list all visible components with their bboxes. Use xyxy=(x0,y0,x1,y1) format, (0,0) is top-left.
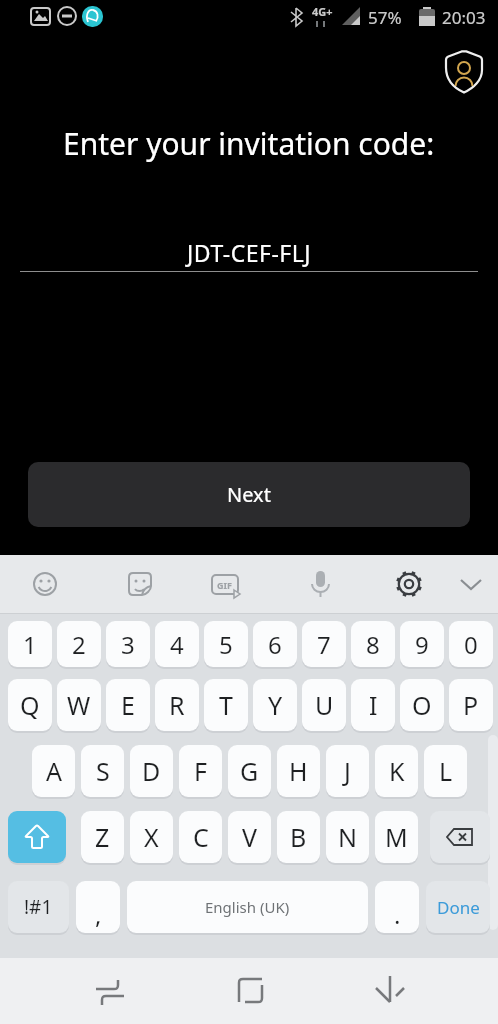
button[interactable]: . xyxy=(375,881,419,933)
button[interactable]: , xyxy=(76,881,120,933)
button[interactable] xyxy=(368,968,412,1012)
staticText: 4G+ xyxy=(312,4,333,19)
staticText: W xyxy=(67,688,91,722)
button[interactable]: 2 xyxy=(57,621,101,667)
button[interactable]: H xyxy=(277,745,320,797)
button[interactable]: GIF xyxy=(205,568,245,600)
staticText: 2 xyxy=(72,628,86,661)
staticText: M xyxy=(385,820,408,854)
button[interactable]: 4 xyxy=(155,621,199,667)
staticText: 1 xyxy=(23,628,37,661)
button[interactable]: A xyxy=(32,745,75,797)
staticText: F xyxy=(194,754,207,788)
button[interactable]: 3 xyxy=(106,621,150,667)
button[interactable] xyxy=(300,568,340,602)
button[interactable]: M xyxy=(375,811,418,863)
button[interactable]: X xyxy=(130,811,173,863)
staticText: Y xyxy=(268,688,283,722)
button[interactable]: O xyxy=(400,679,444,731)
staticText: K xyxy=(389,754,405,788)
button[interactable]: U xyxy=(302,679,346,731)
staticText: H xyxy=(289,754,308,788)
staticText: Q xyxy=(20,688,40,722)
staticText: , xyxy=(95,898,102,931)
staticText: E xyxy=(121,688,135,722)
staticText: O xyxy=(412,688,432,722)
button[interactable]: V xyxy=(228,811,271,863)
button[interactable]: C xyxy=(179,811,222,863)
staticText: B xyxy=(290,820,307,854)
button[interactable]: !#1 xyxy=(8,881,69,933)
button[interactable]: K xyxy=(375,745,418,797)
button[interactable] xyxy=(390,566,428,602)
button[interactable]: 1 xyxy=(8,621,52,667)
staticText: 20:03 xyxy=(442,6,486,29)
button[interactable]: T xyxy=(204,679,248,731)
button[interactable]: R xyxy=(155,679,199,731)
staticText: English (UK) xyxy=(205,897,290,917)
button[interactable]: Done xyxy=(426,881,490,933)
button[interactable]: English (UK) xyxy=(127,881,368,933)
staticText: R xyxy=(169,688,185,722)
staticText: !#1 xyxy=(24,894,53,920)
button[interactable]: P xyxy=(449,679,493,731)
button[interactable]: 0 xyxy=(449,621,493,667)
staticText: Enter your invitation code: xyxy=(63,123,435,164)
staticText: 7 xyxy=(317,628,331,661)
button[interactable]: G xyxy=(228,745,271,797)
staticText: L xyxy=(439,754,453,788)
staticText: Next xyxy=(227,481,271,508)
button[interactable]: 6 xyxy=(253,621,297,667)
staticText: V xyxy=(242,820,258,854)
button[interactable] xyxy=(441,47,489,97)
button[interactable]: Next xyxy=(28,462,470,527)
button[interactable]: J xyxy=(326,745,369,797)
staticText: 8 xyxy=(366,628,380,661)
staticText: Done xyxy=(437,896,480,919)
button[interactable]: 9 xyxy=(400,621,444,667)
staticText: N xyxy=(338,820,358,854)
button[interactable]: E xyxy=(106,679,150,731)
button[interactable] xyxy=(120,568,160,600)
staticText: I xyxy=(369,688,378,722)
button[interactable]: 7 xyxy=(302,621,346,667)
staticText: . xyxy=(394,898,401,931)
staticText: U xyxy=(315,688,334,722)
button[interactable]: N xyxy=(326,811,369,863)
button[interactable]: F xyxy=(179,745,222,797)
staticText: A xyxy=(46,754,62,788)
button[interactable]: Y xyxy=(253,679,297,731)
button[interactable]: 8 xyxy=(351,621,395,667)
button[interactable]: W xyxy=(57,679,101,731)
staticText: 6 xyxy=(268,628,282,661)
staticText: GIF xyxy=(217,579,232,591)
staticText: 5 xyxy=(219,628,233,661)
button[interactable]: S xyxy=(81,745,124,797)
button[interactable]: Q xyxy=(8,679,52,731)
staticText: Z xyxy=(95,820,110,854)
staticText: 4 xyxy=(170,628,184,661)
button[interactable] xyxy=(430,811,490,863)
staticText: P xyxy=(463,688,479,722)
button[interactable]: L xyxy=(424,745,467,797)
button[interactable] xyxy=(228,968,272,1012)
button[interactable]: 5 xyxy=(204,621,248,667)
button[interactable] xyxy=(25,568,65,600)
staticText: 9 xyxy=(415,628,429,661)
button[interactable]: I xyxy=(351,679,395,731)
button[interactable]: Z xyxy=(81,811,124,863)
staticText: 0 xyxy=(464,628,478,661)
staticText: 57% xyxy=(368,6,402,29)
staticText: C xyxy=(193,820,209,854)
staticText: D xyxy=(142,754,161,788)
button[interactable] xyxy=(8,811,66,863)
button[interactable]: B xyxy=(277,811,320,863)
staticText: T xyxy=(219,688,233,722)
button[interactable] xyxy=(88,968,132,1012)
button[interactable] xyxy=(455,570,487,598)
button[interactable]: D xyxy=(130,745,173,797)
staticText: JDT-CEF-FLJ xyxy=(187,237,312,268)
staticText: J xyxy=(344,754,351,788)
staticText: 3 xyxy=(121,628,135,661)
staticText: G xyxy=(240,754,259,788)
